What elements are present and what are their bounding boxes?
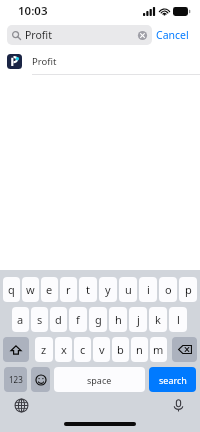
button[interactable]: h <box>109 307 127 332</box>
button[interactable]: 123 <box>4 367 27 392</box>
button[interactable]: a <box>12 307 29 332</box>
staticText: Profit <box>25 28 137 42</box>
button[interactable]: Change keyboard <box>14 398 29 413</box>
staticText: Cancel <box>156 28 189 42</box>
staticText: Profit <box>32 55 57 68</box>
button[interactable]: p <box>179 277 197 302</box>
button[interactable]: s <box>31 307 48 332</box>
button[interactable]: n <box>131 337 148 362</box>
staticText: t <box>86 282 90 297</box>
staticText: k <box>155 312 161 327</box>
button[interactable]: w <box>22 277 39 302</box>
staticText: space <box>87 374 112 386</box>
staticText: i <box>147 282 150 297</box>
button[interactable]: u <box>119 277 137 302</box>
staticText: e <box>46 282 53 297</box>
staticText: 123 <box>9 374 23 385</box>
button[interactable]: search <box>149 367 196 392</box>
staticText: x <box>61 342 67 357</box>
button[interactable]: v <box>93 337 110 362</box>
button[interactable]: y <box>99 277 117 302</box>
button[interactable]: m <box>150 337 167 362</box>
button[interactable]: Backspace <box>172 337 197 362</box>
staticText: v <box>99 342 105 357</box>
button[interactable]: l <box>169 307 187 332</box>
staticText: p <box>185 282 192 297</box>
button[interactable]: b <box>112 337 129 362</box>
staticText: u <box>125 282 132 297</box>
button[interactable]: space <box>54 367 145 392</box>
button[interactable]: d <box>50 307 67 332</box>
staticText: o <box>165 282 172 297</box>
staticText: m <box>153 342 164 357</box>
button[interactable]: c <box>74 337 91 362</box>
button[interactable]: Profit <box>0 48 200 74</box>
button[interactable]: Profit <box>7 25 152 45</box>
staticText: a <box>17 312 24 327</box>
staticText: q <box>8 282 15 297</box>
staticText: r <box>66 282 71 297</box>
button[interactable]: z <box>35 337 53 362</box>
staticText: s <box>37 312 43 327</box>
staticText: b <box>117 342 124 357</box>
staticText: n <box>136 342 143 357</box>
staticText: c <box>80 342 86 357</box>
staticText: d <box>55 312 62 327</box>
button[interactable]: Emoji <box>31 367 50 392</box>
button[interactable]: Shift <box>3 337 29 362</box>
staticText: j <box>137 312 140 327</box>
button[interactable]: k <box>149 307 167 332</box>
button[interactable]: o <box>159 277 177 302</box>
staticText: z <box>41 342 47 357</box>
staticText: 10:03 <box>18 3 48 19</box>
staticText: search <box>159 374 187 386</box>
button[interactable]: j <box>129 307 147 332</box>
button[interactable]: e <box>41 277 58 302</box>
staticText: l <box>177 312 180 327</box>
button[interactable]: q <box>3 277 20 302</box>
staticText: h <box>115 312 122 327</box>
button[interactable]: t <box>79 277 97 302</box>
button[interactable]: Cancel <box>152 25 193 45</box>
button[interactable]: i <box>139 277 157 302</box>
button[interactable]: g <box>89 307 107 332</box>
button[interactable]: f <box>69 307 87 332</box>
staticText: w <box>26 282 35 297</box>
staticText: f <box>76 312 80 327</box>
staticText: y <box>105 282 111 297</box>
button[interactable]: x <box>55 337 72 362</box>
staticText: g <box>95 312 102 327</box>
button[interactable]: Dictate <box>171 398 186 413</box>
button[interactable]: r <box>60 277 77 302</box>
button[interactable]: Clear text <box>137 30 148 41</box>
